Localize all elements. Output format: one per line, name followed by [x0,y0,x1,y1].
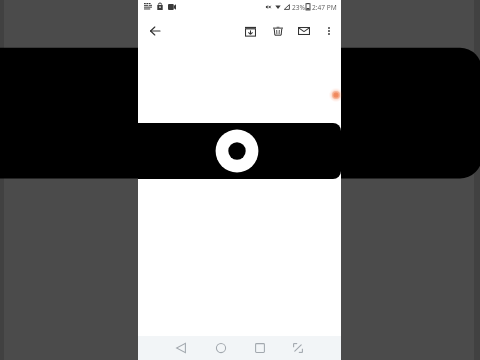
staticText: 23% [292,3,306,12]
button[interactable]: Archive [240,21,260,41]
button[interactable]: Delete [268,21,288,41]
button[interactable]: Back [171,337,191,359]
button[interactable]: Back [145,21,165,41]
button[interactable]: Home [211,337,231,359]
button[interactable]: Mail [294,21,314,41]
staticText: 2:47 PM [312,3,337,12]
button[interactable]: Recents [250,337,270,359]
button[interactable]: More options [319,21,339,41]
button[interactable]: Shrink screen [288,337,308,359]
